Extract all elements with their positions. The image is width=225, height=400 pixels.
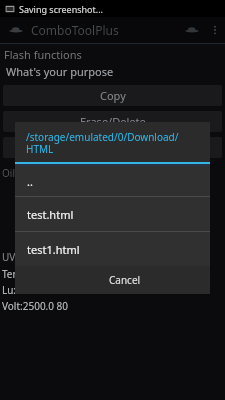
staticText: test.html — [27, 207, 74, 222]
button[interactable]: test.html — [15, 197, 210, 231]
staticText: test1.html — [27, 242, 80, 257]
button[interactable]: Cancel — [101, 269, 149, 291]
staticText: .. — [27, 174, 33, 189]
staticText: /storage/emulated/0/Download/HTML — [26, 130, 202, 156]
button[interactable]: Cloud — [179, 17, 205, 43]
staticText: Lux :3691.40625 bd — [2, 283, 94, 297]
staticText: Copy — [100, 88, 126, 103]
staticText: Oil — [2, 166, 15, 180]
button[interactable]: More options — [205, 17, 225, 43]
staticText: ComboToolPlus — [31, 22, 119, 38]
button[interactable] — [3, 137, 222, 158]
staticText: Erase/Delete — [80, 114, 146, 129]
button[interactable]: Copy — [3, 85, 222, 106]
staticText: Cancel — [109, 273, 141, 287]
button[interactable]: App icon — [5, 19, 27, 41]
staticText: Volt:2500.0 80 — [2, 299, 69, 313]
staticText: UV — [2, 250, 16, 264]
staticText: Flash functions — [4, 47, 82, 62]
button[interactable]: test1.html — [15, 232, 210, 266]
button[interactable]: Erase/Delete — [3, 111, 222, 132]
staticText: What's your purpose — [6, 64, 114, 79]
button[interactable]: .. — [15, 166, 210, 196]
staticText: Saving screenshot... — [19, 3, 104, 15]
staticText: Temp:3925.78125 c9 — [2, 267, 98, 281]
